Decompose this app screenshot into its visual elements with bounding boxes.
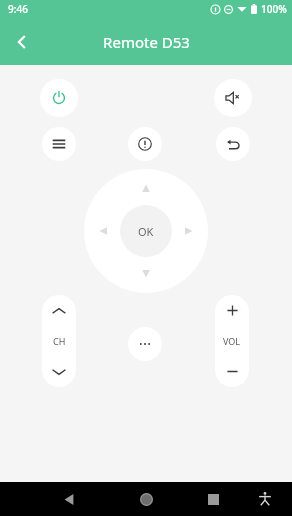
staticText: 100% [261, 2, 287, 16]
button[interactable]: Channel up [42, 295, 76, 326]
button[interactable]: Volume down [215, 356, 249, 387]
button[interactable]: Info [128, 127, 162, 161]
button[interactable]: Return [216, 127, 250, 161]
button[interactable]: Recent apps [196, 482, 230, 516]
staticText: OK [138, 224, 154, 239]
button[interactable]: Back [52, 482, 86, 516]
button[interactable]: Power [40, 79, 78, 117]
button[interactable]: OK [120, 205, 172, 257]
button[interactable]: Right [174, 211, 208, 251]
staticText: 9:46 [8, 2, 28, 16]
button[interactable]: Menu [42, 127, 76, 161]
button[interactable]: Channel down [42, 356, 76, 387]
staticText: VOL [223, 335, 241, 347]
button[interactable]: Mute [214, 79, 252, 117]
button[interactable]: Up [126, 169, 166, 203]
button[interactable]: Back [4, 24, 40, 60]
staticText: Remote D53 [103, 32, 190, 52]
button[interactable]: Home [129, 482, 163, 516]
button[interactable]: Accessibility [250, 484, 280, 514]
button[interactable]: Volume up [215, 295, 249, 326]
staticText: CH [53, 335, 66, 347]
button[interactable]: Down [126, 259, 166, 293]
button[interactable]: Left [84, 211, 118, 251]
button[interactable]: More [128, 327, 162, 361]
